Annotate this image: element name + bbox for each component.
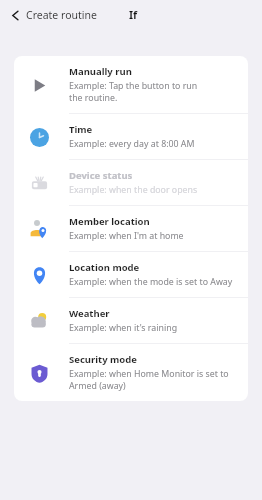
staticText: Example: every day at 8:00 AM bbox=[69, 138, 195, 150]
staticText: Example: Tap the button to run the routi… bbox=[69, 80, 198, 104]
button: Device status bbox=[14, 160, 248, 205]
button[interactable]: If bbox=[129, 8, 138, 22]
staticText: Example: when Home Monitor is set to Arm… bbox=[69, 368, 229, 392]
button[interactable]: Member location bbox=[14, 206, 248, 251]
staticText: Manually run bbox=[69, 65, 132, 78]
button[interactable]: Security mode bbox=[14, 344, 248, 401]
staticText: Time bbox=[69, 123, 93, 136]
button[interactable]: Weather bbox=[14, 298, 248, 343]
staticText: Location mode bbox=[69, 261, 140, 274]
staticText: Security mode bbox=[69, 353, 137, 366]
staticText: Example: when the door opens bbox=[69, 184, 198, 196]
button[interactable]: Time bbox=[14, 114, 248, 159]
staticText: Example: when I'm at home bbox=[69, 230, 184, 242]
button[interactable]: Back bbox=[6, 5, 101, 25]
other: Back bbox=[10, 10, 21, 21]
staticText: Member location bbox=[69, 215, 150, 228]
staticText: Weather bbox=[69, 307, 110, 320]
staticText: Device status bbox=[69, 169, 133, 182]
staticText: Example: when the mode is set to Away bbox=[69, 276, 233, 288]
staticText: Create routine bbox=[26, 8, 97, 22]
staticText: Example: when it's raining bbox=[69, 322, 178, 334]
button[interactable]: Manually run bbox=[14, 56, 248, 113]
button[interactable]: Location mode bbox=[14, 252, 248, 297]
